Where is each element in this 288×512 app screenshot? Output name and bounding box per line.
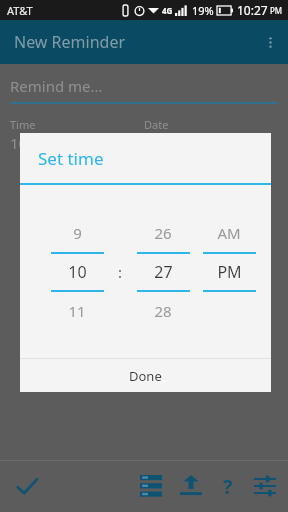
staticText: ? xyxy=(223,473,233,500)
staticText: 10:27 xyxy=(237,2,268,18)
staticText: 10 xyxy=(68,261,87,283)
staticText: Set time xyxy=(38,147,104,170)
button[interactable]: 11 xyxy=(44,295,110,327)
button[interactable]: Settings xyxy=(245,466,285,506)
staticText: Remind me… xyxy=(10,76,103,96)
button[interactable]: 27 xyxy=(130,254,196,290)
button[interactable]: More options xyxy=(252,24,288,60)
staticText: 19% xyxy=(192,3,214,18)
staticText: 27 xyxy=(154,261,173,283)
staticText: PM xyxy=(270,5,283,16)
staticText: 11 xyxy=(68,301,86,321)
button[interactable]: 26 xyxy=(130,217,196,249)
staticText: 10 xyxy=(10,133,28,153)
staticText: : xyxy=(118,262,123,282)
button[interactable]: Done xyxy=(20,359,271,392)
staticText: PM xyxy=(217,261,242,283)
button[interactable]: Save reminder xyxy=(5,464,49,508)
button[interactable]: 28 xyxy=(130,295,196,327)
staticText: AM xyxy=(217,223,241,243)
button[interactable]: AM xyxy=(196,217,262,249)
staticText: 4G xyxy=(162,5,173,16)
staticText: 26 xyxy=(154,223,172,243)
staticText: New Reminder xyxy=(14,31,126,53)
staticText: 28 xyxy=(154,301,172,321)
button[interactable]: PM xyxy=(196,254,262,290)
button[interactable]: Upload xyxy=(171,466,211,506)
staticText: Date xyxy=(144,117,278,132)
button[interactable]: 10 xyxy=(44,254,110,290)
button[interactable]: Help xyxy=(211,469,245,503)
staticText: 9 xyxy=(73,223,82,243)
staticText: AT&T xyxy=(7,3,33,18)
staticText: Time xyxy=(10,117,144,132)
button[interactable]: 9 xyxy=(44,217,110,249)
button[interactable]: Lists xyxy=(131,466,171,506)
staticText: Done xyxy=(129,367,162,385)
